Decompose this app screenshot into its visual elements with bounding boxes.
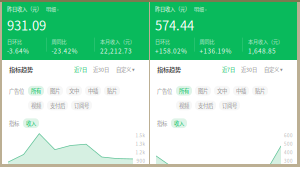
staticText: 自定义 ▾ [264,66,283,73]
button[interactable]: 明细 › [46,5,59,12]
button[interactable]: 所有 [28,86,44,96]
staticText: 近7日 [74,66,87,73]
staticText: 收入 [26,119,36,127]
staticText: 中插 [88,87,98,95]
button[interactable]: 订阅号 [219,101,240,110]
staticText: 近30日 [241,66,257,73]
button[interactable]: 文中 [66,86,82,96]
button[interactable]: 中插 [85,86,101,96]
staticText: 近7日 [222,66,235,73]
staticText: 支付后 [198,102,213,109]
staticText: 931.09 [7,15,46,34]
button[interactable]: 订阅号 [71,101,92,110]
button[interactable]: 收入 [23,118,39,128]
button[interactable]: 贴片 [252,86,268,96]
staticText: 日环比 [7,38,22,45]
staticText: 1.3k [135,140,145,147]
staticText: 明细 › [46,5,59,12]
button[interactable]: 视频 [176,101,192,110]
staticText: 指标趋势 [9,65,33,74]
staticText: 订阅号 [74,102,89,109]
staticText: 日环比 [155,38,170,45]
button[interactable]: 明细 › [194,5,207,12]
staticText: 广告位 [157,87,172,95]
staticText: 所有 [179,87,189,95]
staticText: +136.19% [199,46,231,55]
button[interactable]: 近30日 [235,66,257,73]
staticText: 574.44 [155,15,194,34]
staticText: 广告位 [9,87,24,95]
staticText: 支付后 [50,102,65,109]
button[interactable]: 图片 [195,86,211,96]
button[interactable]: 近7日 [74,66,87,73]
staticText: 本月收入（元） [100,38,135,45]
staticText: 1,648.85 [248,46,276,55]
button[interactable]: 收入 [171,118,187,128]
button[interactable]: 中插 [233,86,249,96]
staticText: 文中 [69,87,79,95]
staticText: 周同比 [51,38,66,45]
staticText: +158.02% [155,46,187,55]
staticText: 400 [284,149,293,156]
staticText: 明细 › [194,5,207,12]
staticText: -23.42% [51,46,77,55]
staticText: 贴片 [255,87,265,95]
staticText: 图片 [50,87,60,95]
staticText: 自定义 ▾ [116,66,135,73]
staticText: 视频 [179,102,189,109]
staticText: 900 [136,157,145,164]
staticText: 1.5k [135,132,145,139]
staticText: 近30日 [93,66,109,73]
staticText: 文中 [217,87,227,95]
staticText: 昨日收入（元） [7,5,42,13]
button[interactable]: 图片 [47,86,63,96]
staticText: 视频 [31,102,41,109]
button[interactable]: 文中 [214,86,230,96]
staticText: 600 [284,132,293,139]
staticText: 收入 [174,119,184,127]
staticText: 中插 [236,87,246,95]
button[interactable]: 自定义 ▾ [109,66,135,73]
button[interactable]: 近7日 [222,66,235,73]
button[interactable]: 贴片 [104,86,120,96]
staticText: 指标 [157,119,167,127]
button[interactable]: 所有 [176,86,192,96]
staticText: 指标 [9,119,19,127]
staticText: 昨日收入（元） [155,5,190,13]
button[interactable]: 支付后 [47,101,68,110]
staticText: 500 [284,140,293,147]
staticText: 贴片 [107,87,117,95]
button[interactable]: 支付后 [195,101,216,110]
staticText: 所有 [31,87,41,95]
staticText: 图片 [198,87,208,95]
staticText: -3.64% [7,46,29,55]
staticText: 本月收入（元） [248,38,283,45]
button[interactable]: 自定义 ▾ [257,66,283,73]
button[interactable]: 视频 [28,101,44,110]
staticText: 周同比 [199,38,214,45]
button[interactable]: 近30日 [87,66,109,73]
staticText: 300 [284,157,293,164]
staticText: 22,212.73 [100,46,132,55]
staticText: 指标趋势 [157,65,181,74]
staticText: 订阅号 [222,102,237,109]
staticText: 1.2k [135,149,145,156]
